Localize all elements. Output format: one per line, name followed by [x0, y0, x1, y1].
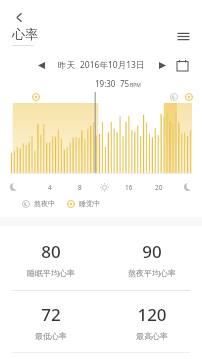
staticText: 熬夜中: [34, 199, 55, 208]
staticText: 72: [41, 303, 61, 326]
staticText: 昨天: [58, 60, 75, 71]
staticText: 睡觉中: [79, 199, 100, 208]
staticText: 90: [142, 240, 162, 263]
staticText: 4: [48, 183, 52, 192]
button[interactable]: 120: [101, 296, 202, 348]
button[interactable]: Menu: [173, 26, 193, 46]
staticText: 最高心率: [136, 331, 168, 341]
staticText: 睡眠平均心率: [27, 268, 75, 278]
button[interactable]: 80: [0, 233, 101, 285]
button[interactable]: Back: [11, 9, 27, 25]
staticText: 80: [41, 240, 61, 263]
button[interactable]: Calendar: [174, 57, 190, 73]
staticText: 120: [137, 303, 167, 326]
staticText: 20: [155, 183, 163, 192]
staticText: BPM: [130, 82, 141, 89]
staticText: 8: [78, 183, 82, 192]
staticText: 16: [125, 183, 133, 192]
staticText: 2016年10月13日: [80, 59, 145, 71]
button[interactable]: 72: [0, 296, 101, 348]
button[interactable]: Next day: [155, 58, 169, 72]
staticText: 心率: [12, 26, 38, 42]
staticText: 75: [120, 78, 130, 89]
button[interactable]: 90: [101, 233, 202, 285]
staticText: 熬夜平均心率: [128, 268, 176, 278]
staticText: 最低心率: [35, 331, 67, 341]
staticText: 19:30: [95, 78, 116, 89]
button[interactable]: Previous day: [34, 58, 48, 72]
